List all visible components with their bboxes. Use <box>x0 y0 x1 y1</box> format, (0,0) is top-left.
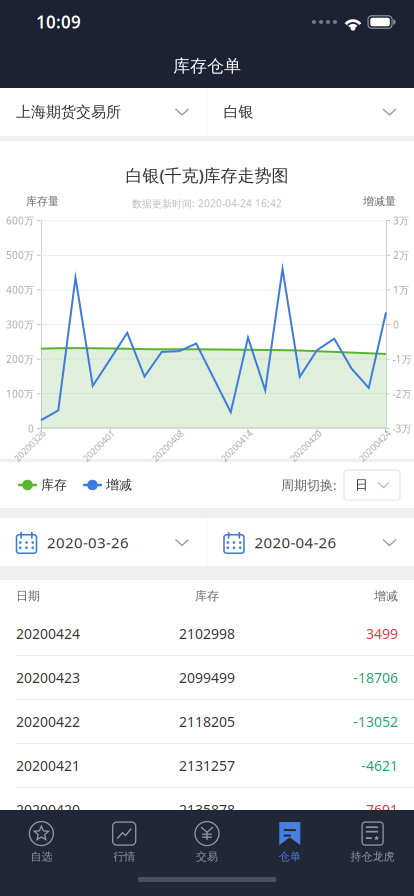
staticText: 3万 <box>393 214 409 227</box>
staticText: 10:09 <box>36 10 81 34</box>
staticText: 2131257 <box>179 756 235 775</box>
button[interactable]: 行情 <box>83 814 166 863</box>
staticText: 20200408 <box>148 440 188 453</box>
button[interactable]: 仓单 <box>248 814 331 863</box>
staticText: 周期切换: <box>281 476 336 494</box>
staticText: 2128187 <box>179 844 235 863</box>
staticText: 20200420 <box>286 440 326 453</box>
staticText: 300万 <box>6 318 34 331</box>
staticText: 20200326 <box>10 440 50 453</box>
staticText: 库存仓单 <box>173 55 241 77</box>
staticText: 行情 <box>113 850 135 863</box>
staticText: 增减 <box>106 477 132 493</box>
staticText: 20200422 <box>16 712 80 731</box>
button[interactable]: 白银 <box>207 88 414 136</box>
staticText: 20200420 <box>16 800 80 819</box>
staticText: 库存 <box>41 477 67 493</box>
staticText: 100万 <box>6 387 34 401</box>
button[interactable]: 日 <box>344 470 400 500</box>
staticText: 0 <box>393 318 399 331</box>
staticText: 自选 <box>30 850 52 863</box>
staticText: 持仓龙虎 <box>351 850 395 863</box>
staticText: 2020-04-26 <box>254 532 336 553</box>
staticText: 交易 <box>196 850 218 863</box>
button[interactable]: 交易 <box>166 814 248 863</box>
button[interactable]: 2020-04-26 <box>207 518 414 566</box>
staticText: 2102998 <box>179 624 235 643</box>
staticText: 3499 <box>366 624 398 643</box>
staticText: 2020-03-26 <box>47 532 129 553</box>
staticText: 20200423 <box>16 668 80 687</box>
staticText: 2万 <box>393 248 409 262</box>
staticText: 白银(千克)库存走势图 <box>125 163 288 187</box>
staticText: 20200421 <box>16 756 80 775</box>
staticText: 1万 <box>393 283 409 297</box>
staticText: 20200424 <box>16 624 80 643</box>
staticText: 白银 <box>223 103 253 121</box>
staticText: 500万 <box>6 248 34 262</box>
button[interactable]: 2020-03-26 <box>0 518 206 566</box>
staticText: 200万 <box>6 352 34 366</box>
staticText: 2099499 <box>179 668 235 687</box>
staticText: -1万 <box>392 352 411 366</box>
staticText: -13052 <box>353 712 398 731</box>
button[interactable]: 上海期货交易所 <box>0 88 206 136</box>
staticText: 400万 <box>6 283 34 297</box>
staticText: -18706 <box>353 668 398 687</box>
staticText: 增减 <box>374 588 398 603</box>
staticText: 600万 <box>6 214 34 227</box>
staticText: 日 <box>355 477 368 493</box>
staticText: 库存量 <box>26 194 59 208</box>
staticText: -2万 <box>392 387 411 401</box>
staticText: 数据更新时间: 2020-04-24 16:42 <box>132 197 282 210</box>
staticText: -3万 <box>392 422 411 435</box>
staticText: 20200419 <box>16 844 80 863</box>
staticText: 2118205 <box>179 712 235 731</box>
staticText: 日期 <box>16 588 40 603</box>
staticText: 仓单 <box>279 850 301 863</box>
button[interactable]: 自选 <box>0 814 83 863</box>
staticText: -4621 <box>361 756 398 775</box>
staticText: 7691 <box>366 800 398 819</box>
staticText: 2135878 <box>179 800 235 819</box>
staticText: 20200414 <box>217 440 257 453</box>
button[interactable]: 持仓龙虎 <box>331 814 414 863</box>
staticText: -2455 <box>361 844 398 863</box>
staticText: 20200424 <box>355 440 395 453</box>
staticText: 增减量 <box>363 194 396 208</box>
staticText: 0 <box>28 422 34 435</box>
staticText: 库存 <box>195 588 219 603</box>
staticText: 20200401 <box>79 440 119 453</box>
staticText: 上海期货交易所 <box>16 103 121 121</box>
